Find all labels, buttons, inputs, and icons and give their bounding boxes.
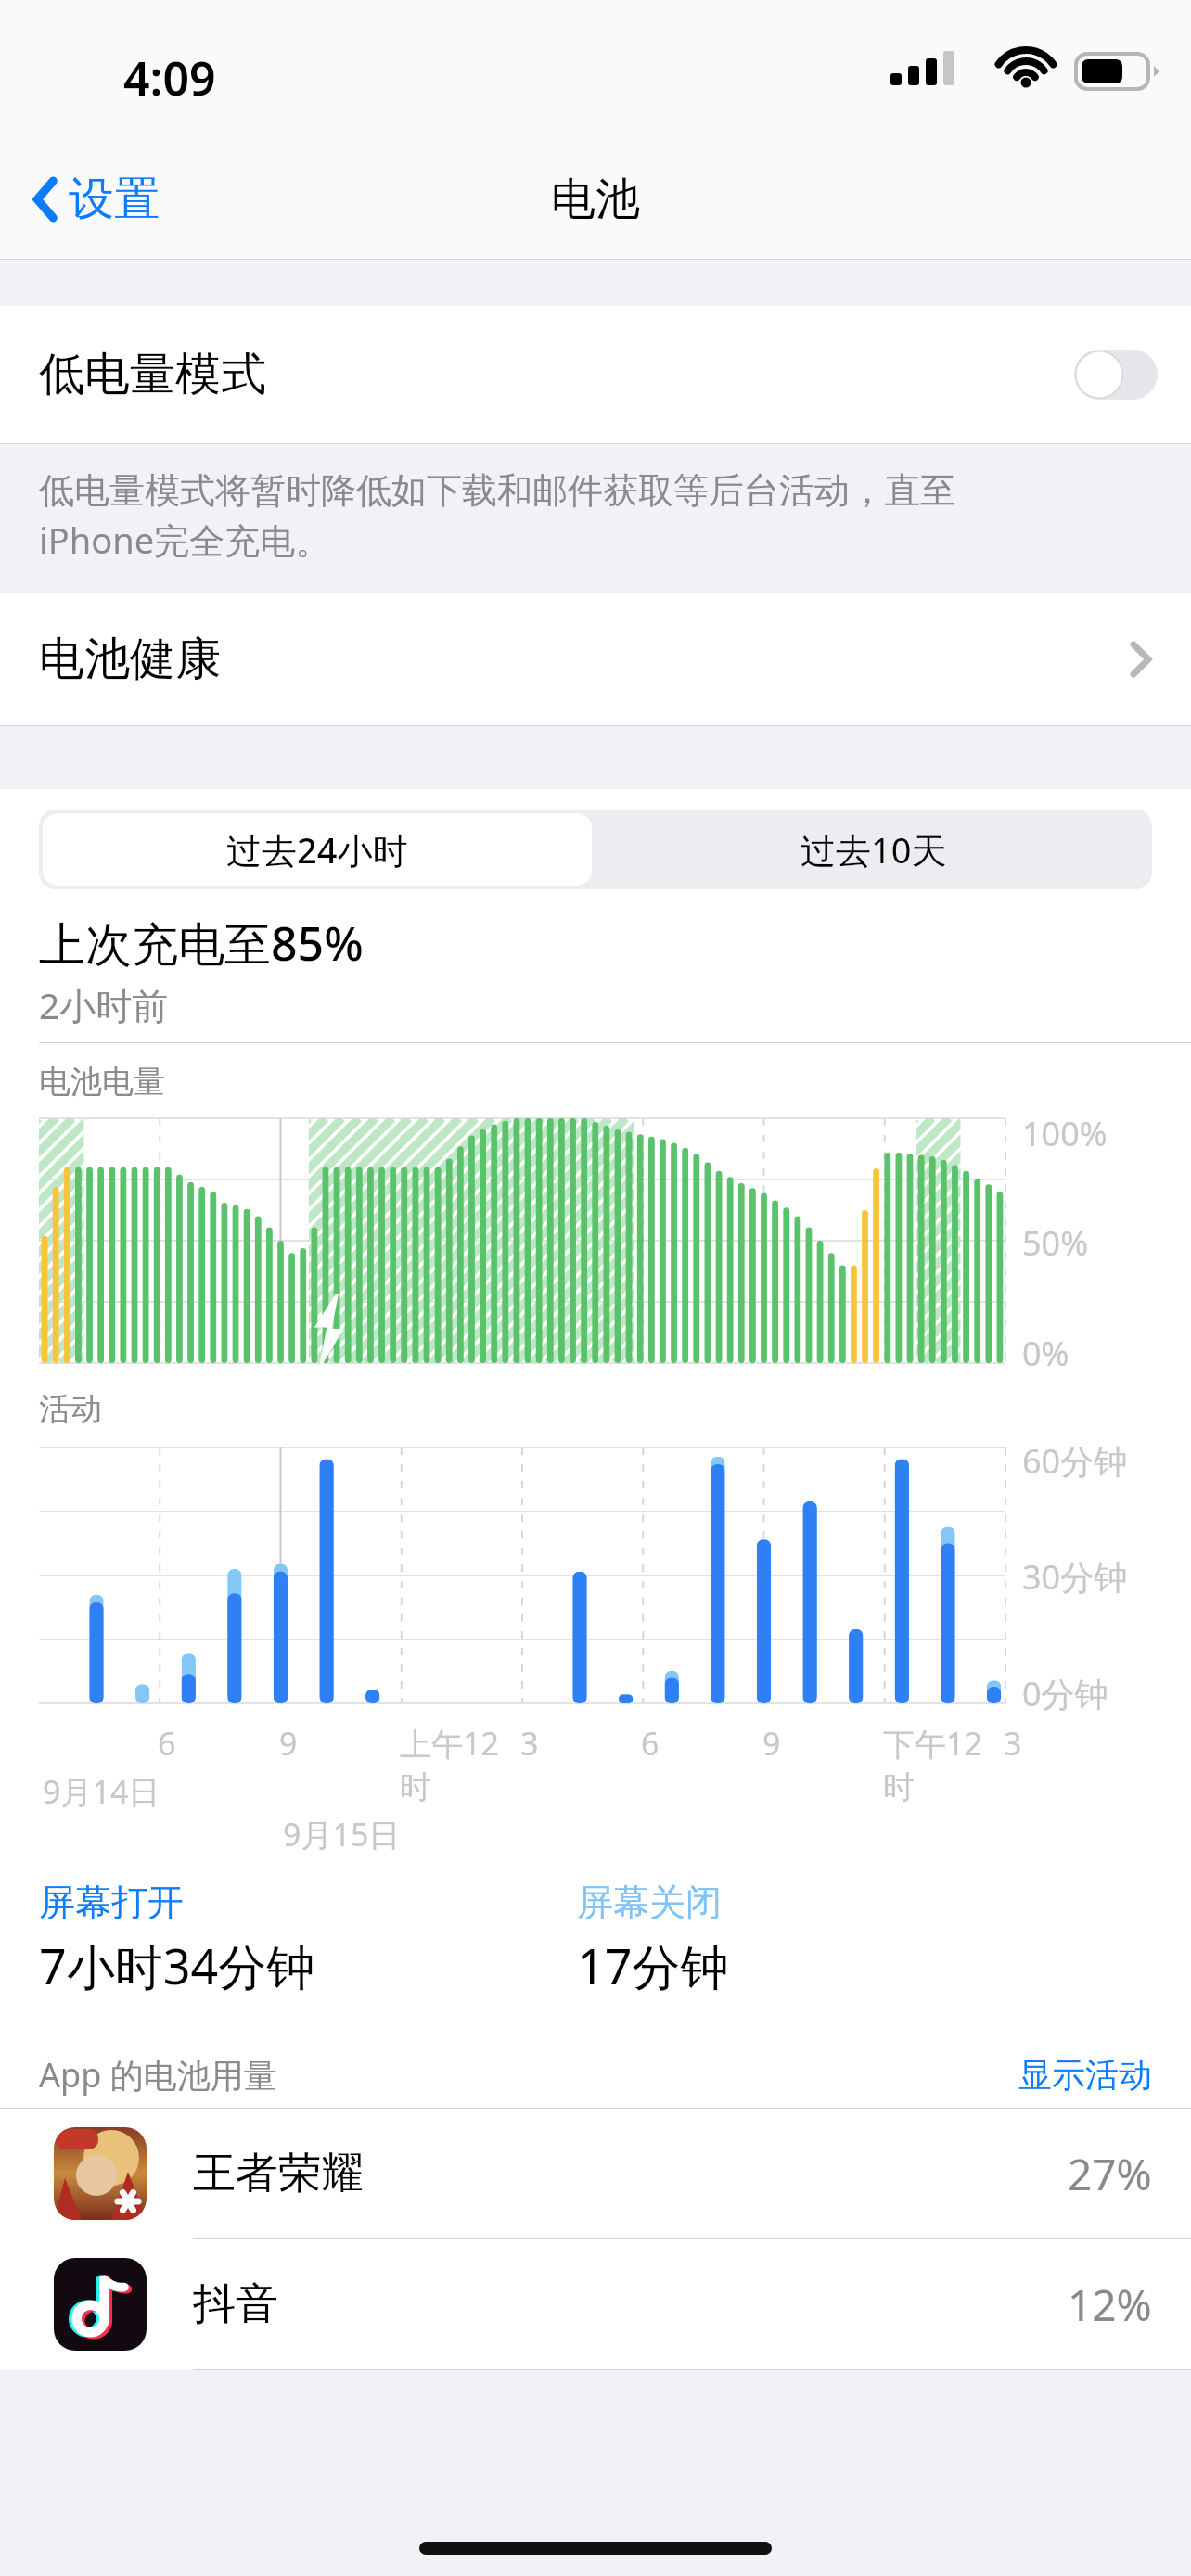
button[interactable]: 低电量模式开关 — [1074, 350, 1158, 400]
staticText: 17分钟 — [577, 1932, 729, 1998]
staticText: 低电量模式 — [39, 346, 266, 403]
staticText: 0分钟 — [1022, 1671, 1108, 1716]
staticText: 0% — [1022, 1331, 1069, 1376]
staticText: 7小时34分钟 — [39, 1932, 315, 1998]
staticText: 3 — [520, 1722, 539, 1765]
button[interactable]: 电池健康 — [0, 593, 1191, 725]
staticText: 显示活动 — [1018, 2054, 1152, 2096]
staticText: 过去24小时 — [226, 825, 408, 874]
staticText: 王者荣耀 — [193, 2147, 364, 2200]
button[interactable]: 抖音 — [0, 2239, 1191, 2369]
staticText: 电池电量 — [39, 1062, 165, 1102]
staticText: 60分钟 — [1022, 1438, 1128, 1484]
staticText: 27% — [1068, 2145, 1152, 2203]
staticText: App 的电池用量 — [39, 2052, 277, 2098]
staticText: 9 — [762, 1722, 781, 1765]
staticText: 6 — [158, 1722, 176, 1765]
staticText: 设置 — [69, 171, 160, 228]
staticText: 过去10天 — [800, 825, 947, 874]
staticText: 上午12 时 — [400, 1722, 499, 1807]
staticText: 6 — [641, 1722, 660, 1765]
staticText: 4:09 — [123, 46, 216, 109]
staticText: 抖音 — [193, 2277, 278, 2331]
staticText: 100% — [1022, 1111, 1108, 1156]
button[interactable]: 显示活动 — [1007, 2048, 1191, 2101]
staticText: 活动 — [39, 1389, 102, 1429]
button[interactable]: 过去24小时 — [43, 813, 592, 886]
staticText: 30分钟 — [1022, 1554, 1128, 1600]
staticText: 屏幕关闭 — [577, 1880, 722, 1925]
button[interactable]: 低电量模式 — [0, 306, 1191, 443]
button[interactable]: 王者荣耀 — [0, 2109, 1191, 2238]
staticText: 2小时前 — [39, 980, 169, 1029]
button[interactable]: 设置 — [0, 161, 176, 237]
staticText: 50% — [1022, 1220, 1089, 1266]
staticText: 屏幕打开 — [39, 1880, 184, 1925]
staticText: 9月14日 — [43, 1770, 160, 1813]
staticText: 3 — [1004, 1722, 1022, 1765]
staticText: 12% — [1068, 2276, 1152, 2334]
staticText: 电池健康 — [39, 631, 221, 688]
staticText: 电池 — [551, 172, 640, 227]
staticText: 9月15日 — [283, 1813, 401, 1855]
button[interactable]: 过去10天 — [595, 810, 1152, 889]
staticText: 下午12 时 — [883, 1722, 982, 1807]
staticText: 低电量模式将暂时降低如下载和邮件获取等后台活动，直至 iPhone完全充电。 — [39, 468, 955, 565]
staticText: 9 — [279, 1722, 298, 1765]
staticText: 上次充电至85% — [39, 912, 364, 975]
